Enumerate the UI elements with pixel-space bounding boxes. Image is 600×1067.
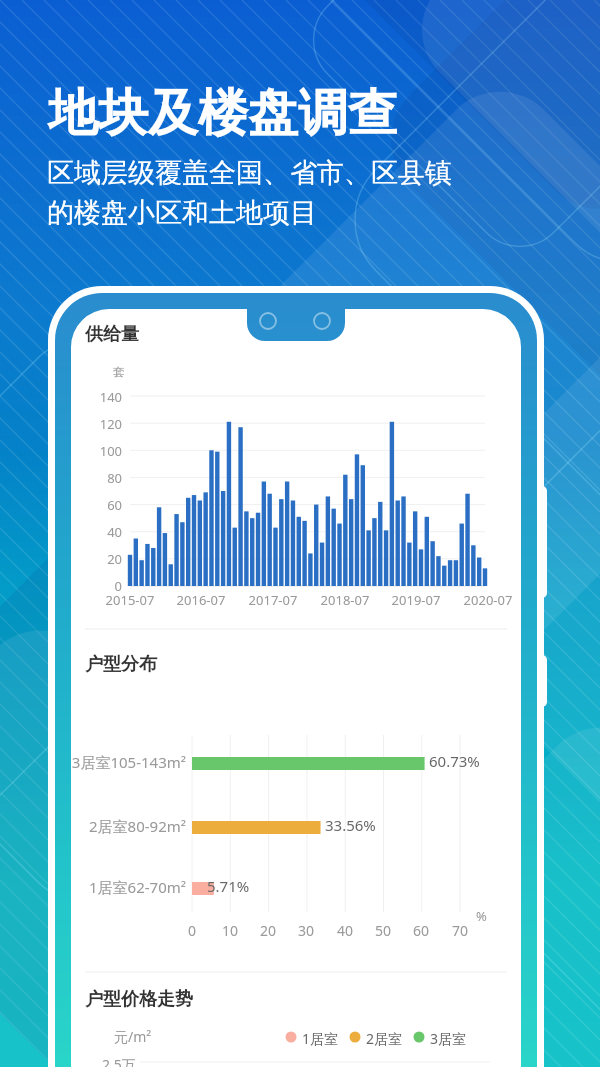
staticText: 0 (82, 577, 122, 595)
staticText: 60.73% (429, 751, 480, 771)
staticText: 2.5万 (102, 1055, 136, 1067)
staticText: 1居室 (302, 1029, 339, 1048)
staticText: 40 (325, 921, 365, 940)
staticText: 30 (286, 921, 326, 940)
staticText: 2017-07 (247, 591, 299, 609)
staticText: 50 (363, 921, 403, 940)
staticText: 2019-07 (390, 591, 442, 609)
staticText: 地块及楼盘调查 (48, 82, 398, 145)
staticText: 2居室 (366, 1029, 403, 1048)
staticText: 120 (82, 415, 122, 433)
staticText: 60 (401, 921, 441, 940)
staticText: 2020-07 (462, 591, 514, 609)
staticText: 2016-07 (175, 591, 227, 609)
staticText: 2018-07 (319, 591, 371, 609)
staticText: 2居室80-92m² (66, 816, 186, 836)
staticText: 20 (248, 921, 288, 940)
staticText: 40 (82, 523, 122, 541)
staticText: 3居室105-143m² (66, 752, 186, 772)
staticText: 1居室62-70m² (66, 877, 186, 897)
staticText: 套 (113, 364, 125, 379)
staticText: % (476, 907, 487, 925)
staticText: 10 (210, 921, 250, 940)
staticText: 区域层级覆盖全国、省市、区县镇 的楼盘小区和土地项目 (47, 156, 452, 230)
staticText: 元/m² (114, 1027, 152, 1046)
staticText: 5.71% (207, 876, 250, 896)
staticText: 户型价格走势 (85, 988, 193, 1011)
staticText: 80 (82, 469, 122, 487)
staticText: 3居室 (430, 1029, 467, 1048)
staticText: 户型分布 (85, 653, 157, 676)
staticText: 70 (440, 921, 480, 940)
staticText: 2015-07 (104, 591, 156, 609)
staticText: 60 (82, 496, 122, 514)
staticText: 供给量 (85, 323, 139, 346)
staticText: 140 (82, 388, 122, 406)
staticText: 33.56% (325, 815, 376, 835)
staticText: 20 (82, 550, 122, 568)
staticText: 100 (82, 442, 122, 460)
staticText: 0 (172, 921, 212, 940)
